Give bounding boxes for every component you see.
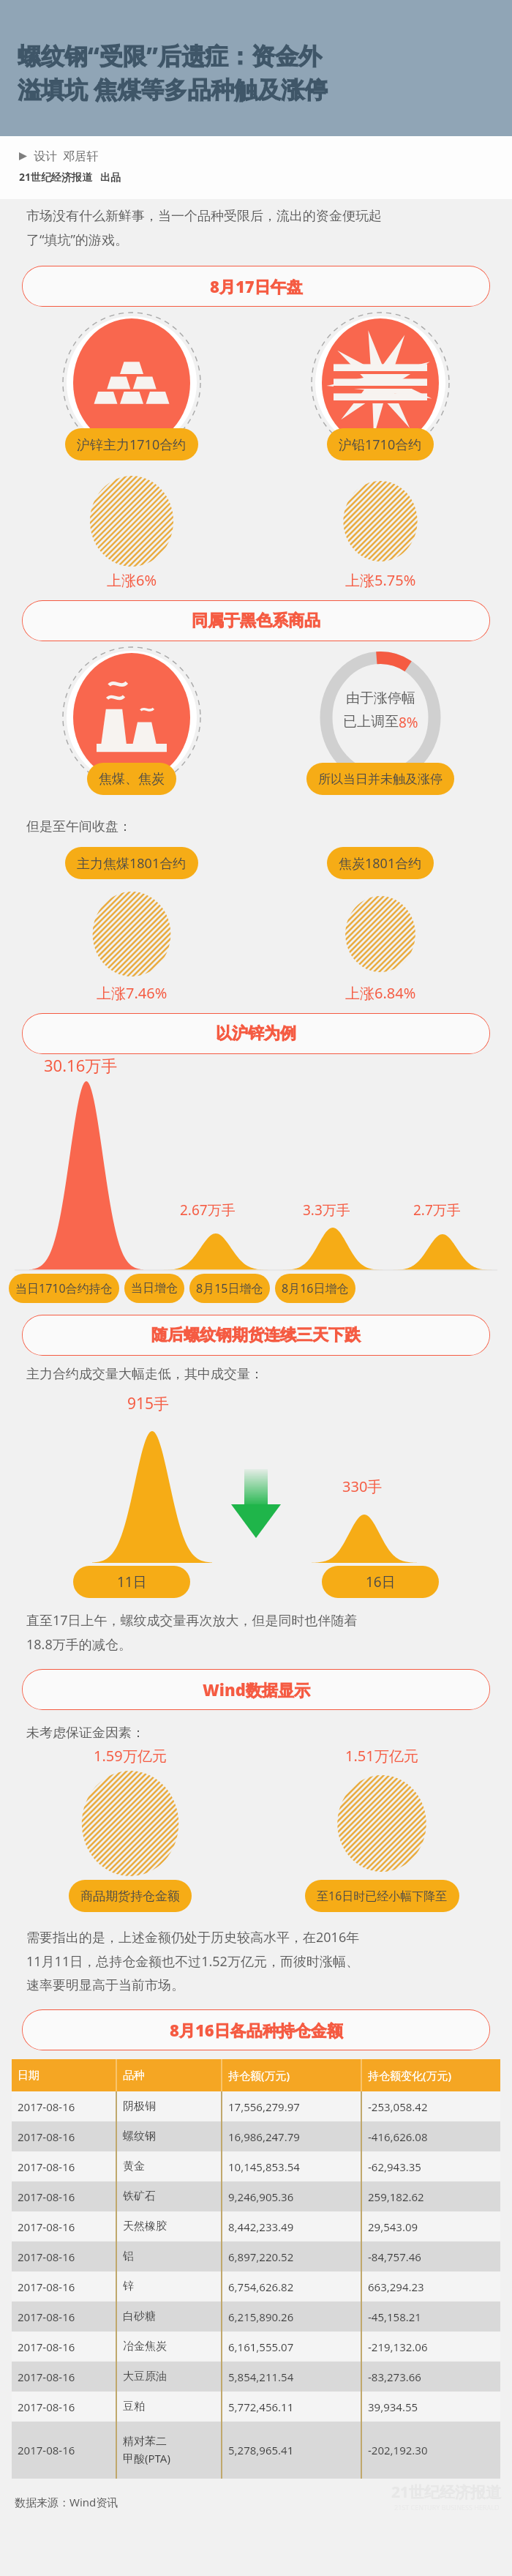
button[interactable]: 2017-08-16	[12, 2241, 500, 2271]
staticText: 所以当日并未触及涨停	[318, 772, 443, 787]
staticText: 3.3万手	[303, 1201, 350, 1220]
button[interactable]: 由于涨停幅	[263, 653, 497, 808]
button[interactable]: 2017-08-16	[12, 2181, 500, 2211]
staticText: 6,897,220.52	[228, 2250, 294, 2264]
staticText: 17,556,279.97	[228, 2099, 300, 2114]
staticText: 16,986,247.79	[228, 2129, 300, 2144]
staticText: 2017-08-16	[18, 2340, 75, 2354]
staticText: 8,442,233.49	[228, 2220, 294, 2234]
button[interactable]: 2017-08-16	[12, 2362, 500, 2392]
staticText: 11日	[117, 1572, 147, 1591]
staticText: 2017-08-16	[18, 2310, 75, 2324]
staticText: 663,294.23	[368, 2280, 424, 2294]
staticText: 主力焦煤1801合约	[77, 854, 187, 873]
button[interactable]: 8月15日增仓	[189, 1274, 270, 1303]
button[interactable]: 沪锌主力1710合约	[65, 428, 198, 460]
button[interactable]: Wind数据显示	[22, 1669, 490, 1710]
button[interactable]: 焦煤、焦炭	[87, 763, 176, 795]
staticText: 主力合约成交量大幅走低，其中成交量：	[26, 1366, 263, 1383]
staticText: 商品期货持仓金额	[80, 1889, 180, 1904]
staticText: 焦煤、焦炭	[99, 771, 165, 788]
staticText: 21世纪经济报道	[391, 2482, 502, 2503]
button[interactable]: 2017-08-16	[12, 2301, 500, 2332]
button[interactable]: 2017-08-16	[12, 2151, 500, 2181]
staticText: 2.7万手	[413, 1201, 461, 1220]
button[interactable]: 随后螺纹钢期货连续三天下跌	[22, 1315, 490, 1356]
staticText: 数据来源：Wind资讯	[15, 2495, 118, 2509]
staticText: -62,943.35	[368, 2159, 421, 2174]
staticText: 6,754,626.82	[228, 2280, 294, 2294]
button[interactable]: 2017-08-16	[12, 2271, 500, 2301]
button[interactable]: 2017-08-16	[12, 2091, 500, 2121]
staticText: 豆粕	[123, 2400, 145, 2413]
button[interactable]: 当日1710合约持仓	[9, 1274, 119, 1303]
staticText: 当日增仓	[131, 1281, 178, 1296]
button[interactable]: 主力焦煤1801合约	[65, 847, 198, 879]
staticText: 9,246,905.36	[228, 2189, 294, 2204]
staticText: 随后螺纹钢期货连续三天下跌	[151, 1325, 361, 1345]
staticText: 冶金焦炭	[123, 2340, 167, 2353]
staticText: 16日	[366, 1572, 396, 1591]
staticText: 白砂糖	[123, 2310, 156, 2323]
button[interactable]: 11日	[73, 1566, 190, 1598]
staticText: 2017-08-16	[18, 2400, 75, 2414]
button[interactable]: 2017-08-16	[12, 2211, 500, 2241]
staticText: 焦炭1801合约	[339, 854, 422, 873]
staticText: 330手	[342, 1476, 383, 1496]
staticText: 39,934.55	[368, 2400, 418, 2414]
button[interactable]: 2017-08-16	[12, 2121, 500, 2151]
staticText: 持仓额变化(万元)	[368, 2068, 452, 2083]
staticText: 5,278,965.41	[228, 2443, 294, 2457]
staticText: 至16日时已经小幅下降至	[317, 1888, 448, 1904]
button[interactable]: 16日	[322, 1566, 439, 1598]
staticText: -84,757.46	[368, 2250, 421, 2264]
staticText: 上涨6.84%	[345, 983, 416, 1003]
staticText: 沪锌主力1710合约	[77, 436, 187, 454]
staticText: 螺纹钢“受限”后遗症：资金外 溢填坑 焦煤等多品种触及涨停	[18, 40, 328, 105]
button[interactable]: 2017-08-16	[12, 2332, 500, 2362]
staticText: 8月16日各品种持仓金额	[170, 2019, 343, 2041]
staticText: 精对苯二 甲酸(PTA)	[123, 2435, 170, 2466]
button[interactable]: 所以当日并未触及涨停	[306, 763, 454, 795]
button[interactable]: 以沪锌为例	[22, 1013, 490, 1054]
staticText: 2017-08-16	[18, 2370, 75, 2384]
staticText: 日期	[18, 2069, 39, 2083]
staticText: 黄金	[123, 2159, 145, 2173]
staticText: -45,158.21	[368, 2310, 421, 2324]
staticText: Wind数据显示	[203, 1679, 310, 1700]
staticText: 沪铅1710合约	[339, 436, 422, 454]
button[interactable]: 同属于黑色系商品	[22, 600, 490, 641]
staticText: 1.59万亿元	[94, 1746, 167, 1766]
staticText: 同属于黑色系商品	[192, 611, 320, 631]
button[interactable]: 8月16日增仓	[275, 1274, 355, 1303]
staticText: 上涨5.75%	[345, 570, 416, 590]
staticText: 阴极铜	[123, 2099, 156, 2113]
button[interactable]: 至16日时已经小幅下降至	[305, 1880, 459, 1912]
staticText: 天然橡胶	[123, 2220, 167, 2233]
staticText: 6,215,890.26	[228, 2310, 294, 2324]
staticText: 5,854,211.54	[228, 2370, 294, 2384]
button[interactable]: 沪铅1710合约	[327, 428, 434, 460]
button[interactable]: Coking coal	[15, 653, 249, 808]
staticText: 市场没有什么新鲜事，当一个品种受限后，流出的资金便玩起 了“填坑”的游戏。	[26, 208, 382, 248]
button[interactable]: 8月17日午盘	[22, 266, 490, 307]
staticText: 以沪锌为例	[216, 1023, 296, 1044]
staticText: 当日1710合约持仓	[15, 1280, 113, 1296]
staticText: 21世纪经济报道 出品	[19, 170, 121, 184]
staticText: 2017-08-16	[18, 2220, 75, 2234]
button[interactable]: 2017-08-16	[12, 2392, 500, 2422]
button[interactable]: 商品期货持仓金额	[69, 1880, 192, 1912]
button[interactable]: 当日增仓	[124, 1274, 184, 1303]
button[interactable]: 焦炭1801合约	[327, 847, 434, 879]
button[interactable]: Zinc contract	[15, 318, 249, 474]
staticText: 由于涨停幅	[346, 690, 415, 707]
button[interactable]: Lead contract	[263, 318, 497, 474]
staticText: 8月17日午盘	[210, 275, 303, 297]
button[interactable]: 2017-08-16	[12, 2422, 500, 2479]
staticText: 30.16万手	[44, 1054, 118, 1076]
staticText: 2.67万手	[180, 1201, 236, 1220]
button[interactable]: 8月16日各品种持仓金额	[22, 2009, 490, 2050]
staticText: 259,182.62	[368, 2189, 424, 2204]
staticText: -253,058.42	[368, 2099, 428, 2114]
staticText: 8月16日增仓	[282, 1280, 349, 1296]
